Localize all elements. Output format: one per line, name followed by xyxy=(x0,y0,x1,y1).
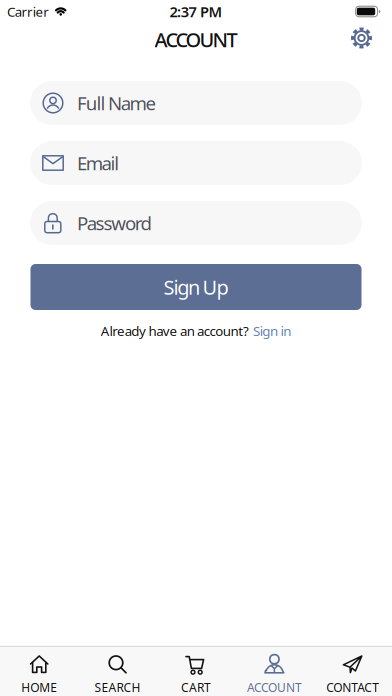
button[interactable]: Full Name xyxy=(30,81,362,125)
staticText: 2:37 PM xyxy=(169,2,223,21)
staticText: Carrier xyxy=(7,3,49,20)
button[interactable]: Sign Up xyxy=(30,264,361,310)
button[interactable]: ACCOUNT xyxy=(235,647,314,696)
button[interactable]: HOME xyxy=(0,647,78,696)
staticText: HOME xyxy=(21,679,57,695)
staticText: ACCOUNT xyxy=(154,26,237,53)
staticText: Sign in xyxy=(253,322,291,340)
staticText: Already have an account? xyxy=(101,322,249,340)
button[interactable]: SEARCH xyxy=(78,647,157,696)
staticText: CONTACT xyxy=(326,679,379,695)
staticText: SEARCH xyxy=(95,679,141,695)
staticText: CART xyxy=(181,679,211,695)
staticText: ACCOUNT xyxy=(247,679,302,695)
button[interactable]: Email xyxy=(30,141,362,185)
staticText: Sign Up xyxy=(164,274,228,300)
button[interactable]: Password xyxy=(30,201,362,245)
staticText: Full Name xyxy=(77,91,156,115)
button[interactable]: Already have an account? xyxy=(101,322,291,340)
button[interactable]: CART xyxy=(157,647,235,696)
staticText: Email xyxy=(77,151,119,175)
button[interactable]: CONTACT xyxy=(314,647,392,696)
button[interactable] xyxy=(350,26,392,52)
staticText: Password xyxy=(77,211,152,235)
